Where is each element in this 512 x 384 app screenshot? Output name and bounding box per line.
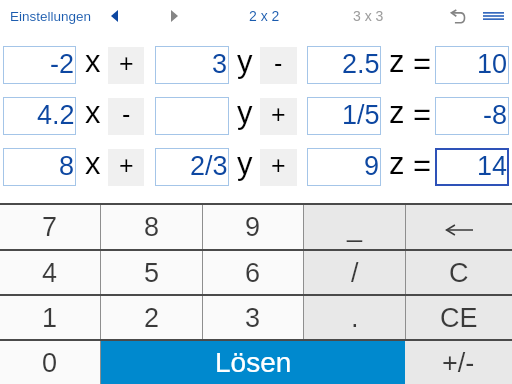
button[interactable]: -2 — [3, 46, 76, 84]
other: Backspace — [406, 205, 512, 249]
button[interactable]: 7 — [0, 205, 100, 249]
staticText: z — [389, 44, 405, 79]
staticText: 5 — [144, 258, 160, 288]
staticText: 8 — [144, 212, 160, 242]
button[interactable]: 2 x 2 — [249, 8, 280, 24]
button[interactable]: 6 — [203, 251, 303, 294]
button[interactable] — [155, 97, 229, 135]
staticText: 9 — [245, 212, 261, 242]
button[interactable]: 4.2 — [3, 97, 76, 135]
staticText: 0 — [42, 348, 58, 378]
staticText: - — [122, 100, 131, 128]
staticText: CE — [440, 303, 478, 333]
staticText: x — [85, 95, 101, 130]
staticText: y — [237, 95, 253, 130]
button[interactable]: 9 — [307, 148, 381, 186]
button[interactable]: +/- — [405, 341, 512, 384]
staticText: 4 — [42, 258, 58, 288]
staticText: 2.5 — [342, 49, 380, 79]
button[interactable]: + — [108, 47, 144, 84]
button[interactable]: + — [108, 149, 144, 186]
staticText: -8 — [483, 100, 508, 130]
button[interactable]: . — [304, 296, 405, 339]
button[interactable]: Previous — [103, 5, 125, 27]
staticText: + — [119, 49, 134, 77]
staticText: = — [413, 46, 432, 81]
button[interactable]: 10 — [435, 46, 509, 84]
button[interactable]: 3 — [155, 46, 229, 84]
button[interactable]: + — [260, 98, 297, 135]
staticText: 2 — [144, 303, 160, 333]
button[interactable]: 2.5 — [307, 46, 381, 84]
staticText: z — [389, 146, 405, 181]
staticText: 4.2 — [37, 100, 75, 130]
staticText: Lösen — [215, 347, 292, 378]
button[interactable]: 8 — [3, 148, 76, 186]
button[interactable]: 5 — [101, 251, 202, 294]
staticText: y — [237, 146, 253, 181]
staticText: 1/5 — [342, 100, 380, 130]
button[interactable]: / — [304, 251, 405, 294]
button[interactable]: Lösen — [101, 341, 405, 384]
staticText: x — [85, 146, 101, 181]
staticText: / — [351, 258, 359, 288]
staticText: + — [271, 100, 286, 128]
staticText: x — [85, 44, 101, 79]
staticText: 7 — [42, 212, 58, 242]
staticText: 3 — [245, 303, 261, 333]
button[interactable]: 1 — [0, 296, 100, 339]
button[interactable]: - — [108, 98, 144, 135]
button[interactable]: _ — [304, 205, 405, 249]
staticText: + — [119, 151, 134, 179]
staticText: 2/3 — [190, 151, 228, 181]
staticText: +/- — [442, 348, 475, 378]
staticText: z — [389, 95, 405, 130]
button[interactable]: Backspace — [406, 205, 512, 249]
button[interactable]: 2 — [101, 296, 202, 339]
button[interactable]: 1/5 — [307, 97, 381, 135]
staticText: + — [271, 151, 286, 179]
button[interactable]: -8 — [435, 97, 509, 135]
button[interactable]: 3 x 3 — [353, 8, 384, 24]
button[interactable]: + — [260, 149, 297, 186]
staticText: 8 — [59, 151, 75, 181]
button[interactable]: - — [260, 47, 297, 84]
button[interactable]: 0 — [0, 341, 100, 384]
staticText: 14 — [477, 151, 508, 181]
button[interactable]: Menu — [479, 2, 507, 30]
button[interactable]: 14 — [435, 148, 509, 186]
button[interactable]: 8 — [101, 205, 202, 249]
staticText: . — [351, 303, 359, 333]
staticText: - — [274, 49, 283, 77]
button[interactable]: 2/3 — [155, 148, 229, 186]
staticText: _ — [347, 212, 363, 242]
staticText: 9 — [364, 151, 380, 181]
button[interactable]: C — [406, 251, 512, 294]
button[interactable]: 3 — [203, 296, 303, 339]
staticText: 6 — [245, 258, 261, 288]
button[interactable]: 9 — [203, 205, 303, 249]
staticText: y — [237, 44, 253, 79]
staticText: = — [413, 148, 432, 183]
staticText: = — [413, 97, 432, 132]
staticText: -2 — [50, 49, 75, 79]
button[interactable]: CE — [406, 296, 512, 339]
button[interactable]: Undo — [447, 5, 469, 27]
staticText: 3 — [212, 49, 228, 79]
button[interactable]: Next — [163, 5, 185, 27]
button[interactable]: 4 — [0, 251, 100, 294]
staticText: 1 — [42, 303, 58, 333]
button[interactable]: Einstellungen — [10, 9, 92, 24]
staticText: 10 — [477, 49, 508, 79]
staticText: C — [449, 258, 469, 288]
